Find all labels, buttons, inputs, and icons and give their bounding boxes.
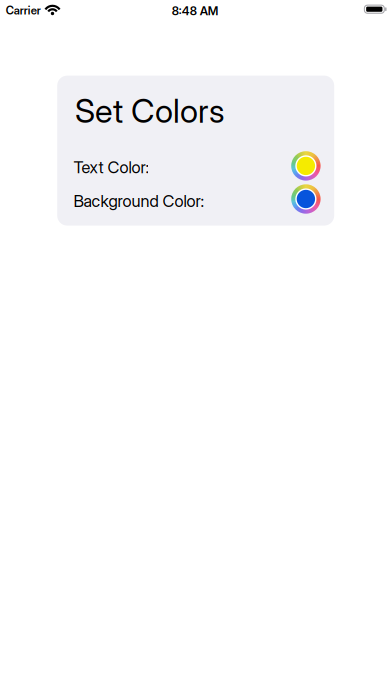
staticText: Background Color: <box>73 191 204 211</box>
button[interactable]: Background Color <box>291 184 321 214</box>
staticText: 8:48 AM <box>172 3 219 18</box>
staticText: Set Colors <box>75 91 225 130</box>
button[interactable]: Text Color <box>291 151 321 181</box>
staticText: Text Color: <box>73 157 149 177</box>
staticText: Carrier <box>6 4 41 17</box>
